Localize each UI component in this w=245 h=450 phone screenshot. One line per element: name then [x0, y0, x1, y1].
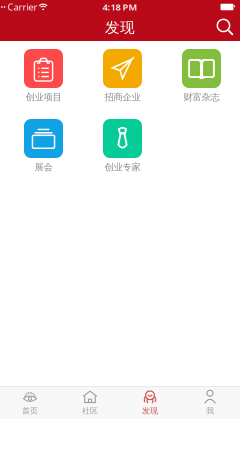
staticText: 社区 — [82, 406, 98, 416]
staticText: 招商企业 — [104, 91, 140, 103]
button[interactable]: Search — [212, 14, 239, 41]
button[interactable]: 社区 — [60, 386, 120, 419]
staticText: 展会 — [34, 161, 52, 173]
button[interactable]: 创业专家 — [83, 119, 162, 179]
button[interactable]: 展会 — [4, 119, 83, 179]
staticText: 财富杂志 — [183, 91, 219, 103]
staticText: 4:18 PM — [102, 1, 137, 13]
staticText: 创业项目 — [25, 91, 61, 103]
button[interactable]: 招商企业 — [83, 49, 162, 109]
button[interactable]: 财富杂志 — [162, 49, 241, 109]
staticText: 首页 — [22, 406, 38, 416]
staticText: 发现 — [105, 18, 135, 36]
staticText: 发现 — [142, 406, 158, 416]
button[interactable]: 首页 — [0, 386, 60, 419]
button[interactable]: 我 — [180, 386, 240, 419]
staticText: 我 — [206, 406, 214, 416]
button[interactable]: 发现 — [120, 386, 180, 419]
staticText: Carrier — [7, 1, 37, 13]
staticText: 创业专家 — [104, 161, 140, 173]
button[interactable]: 创业项目 — [4, 49, 83, 109]
